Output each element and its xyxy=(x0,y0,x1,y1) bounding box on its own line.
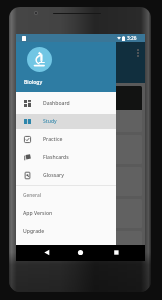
button[interactable]: Dashboard xyxy=(16,94,116,112)
staticText: Biology xyxy=(30,49,53,57)
staticText: 12 topics xyxy=(24,185,42,191)
staticText: Cell Biology xyxy=(24,116,52,123)
button[interactable]: STUDY xyxy=(30,70,45,76)
button[interactable]: Glossary xyxy=(16,166,116,184)
staticText: Study xyxy=(43,118,57,125)
button[interactable]: Recent apps xyxy=(106,245,126,261)
staticText: Genetics xyxy=(24,176,45,183)
staticText: 12 topics xyxy=(24,153,42,159)
button[interactable]: Flashcards xyxy=(16,148,116,166)
button[interactable]: Upgrade xyxy=(16,222,116,240)
staticText: Ecology xyxy=(24,240,43,247)
button[interactable]: Home xyxy=(71,245,91,261)
button[interactable]: App Version xyxy=(16,204,116,222)
staticText: Biology xyxy=(24,79,43,86)
staticText: App Version xyxy=(23,210,53,217)
staticText: General xyxy=(23,192,41,199)
staticText: Evolution xyxy=(24,208,47,215)
staticText: Dashboard xyxy=(43,100,70,107)
button[interactable]: More options xyxy=(136,49,140,60)
staticText: Upgrade xyxy=(23,228,45,235)
staticText: 3:26 xyxy=(127,35,137,42)
button[interactable]: Practice xyxy=(16,130,116,148)
button[interactable]: Study xyxy=(16,112,116,130)
button[interactable]: Back xyxy=(39,245,59,261)
staticText: Practice xyxy=(43,136,63,143)
staticText: Flashcards xyxy=(43,154,69,161)
staticText: Glossary xyxy=(43,172,64,179)
